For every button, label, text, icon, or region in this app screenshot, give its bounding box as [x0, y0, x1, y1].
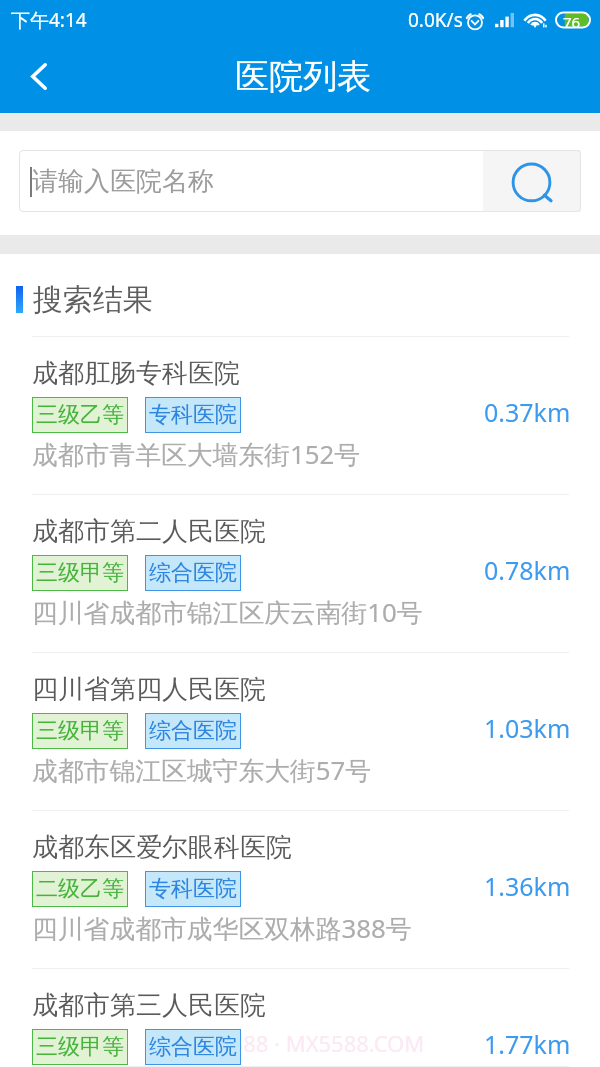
button[interactable]: 成都市第三人民医院 [0, 969, 600, 1067]
staticText: 76 [563, 12, 581, 28]
staticText: 四川省第四人民医院 [32, 673, 266, 706]
staticText: 专科医院 [149, 401, 237, 429]
staticText: 三级乙等 [36, 401, 124, 429]
staticText: 请输入医院名称 [32, 165, 214, 198]
staticText: 综合医院 [149, 559, 237, 587]
staticText: 成都市锦江区城守东大街57号 [32, 752, 372, 787]
staticText: 搜索结果 [33, 281, 153, 319]
staticText: 0.0K/s [408, 7, 463, 33]
staticText: 综合医院 [149, 1033, 237, 1061]
button[interactable]: 成都东区爱尔眼科医院 [0, 811, 600, 969]
staticText: 综合医院 [149, 717, 237, 745]
staticText: 二级乙等 [36, 875, 124, 903]
staticText: 医院列表 [235, 55, 371, 98]
button[interactable]: 成都肛肠专科医院 [0, 337, 600, 495]
staticText: 三级甲等 [36, 559, 124, 587]
staticText: 专科医院 [149, 875, 237, 903]
staticText: 成都东区爱尔眼科医院 [32, 831, 292, 864]
staticText: 1.77km [484, 1027, 571, 1061]
staticText: 成都市第三人民医院 [32, 989, 266, 1022]
staticText: 四川省成都市锦江区庆云南街10号 [32, 594, 423, 629]
staticText: 四川省成都市成华区双林路388号 [32, 910, 412, 945]
staticText: 三级甲等 [36, 717, 124, 745]
staticText: 0.37km [484, 395, 571, 429]
staticText: 成都肛肠专科医院 [32, 357, 240, 390]
button[interactable]: 成都市第二人民医院 [0, 495, 600, 653]
button[interactable]: Search [483, 150, 581, 212]
staticText: 下午4:14 [11, 7, 87, 33]
staticText: 1.03km [484, 711, 571, 745]
staticText: 三级甲等 [36, 1033, 124, 1061]
staticText: 1.36km [484, 869, 571, 903]
button[interactable]: Back [0, 40, 78, 113]
button[interactable]: 四川省第四人民医院 [0, 653, 600, 811]
staticText: 5588 · MX5588.COM [218, 1028, 425, 1058]
staticText: 成都市第二人民医院 [32, 515, 266, 548]
staticText: 0.78km [484, 553, 571, 587]
staticText: 成都市青羊区大墙东街152号 [32, 436, 361, 471]
